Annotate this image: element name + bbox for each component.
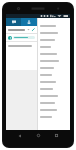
button[interactable] [38,36,70,43]
button[interactable] [38,29,70,36]
button[interactable] [38,22,70,29]
button[interactable] [38,64,70,71]
button[interactable] [38,85,70,92]
button[interactable] [38,57,70,64]
button[interactable] [38,113,70,120]
button[interactable] [38,71,70,78]
button[interactable]: New message [6,26,37,33]
button[interactable] [38,106,70,113]
button[interactable]: New message [32,28,35,31]
button[interactable] [38,43,70,50]
button[interactable] [38,92,70,99]
button[interactable] [38,50,70,57]
button[interactable]: Home [34,131,43,140]
button[interactable]: Recents [52,131,61,140]
button[interactable]: Contacts tab [21,18,37,26]
button[interactable] [38,78,70,85]
button[interactable] [6,34,37,41]
button[interactable]: Chats tab [6,18,21,26]
button[interactable] [38,99,70,106]
button[interactable]: Back [15,131,24,140]
